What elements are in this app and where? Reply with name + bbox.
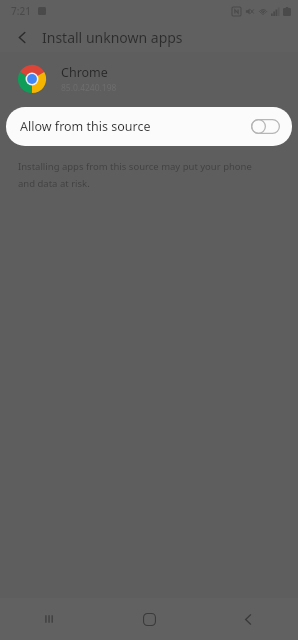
staticText: and data at risk. xyxy=(18,177,90,190)
button[interactable]: Back xyxy=(8,23,36,51)
staticText: Chrome xyxy=(61,64,108,81)
staticText: Allow from this source xyxy=(20,118,151,135)
staticText: Install unknown apps xyxy=(42,28,183,47)
staticText: 7:21 xyxy=(11,4,31,18)
staticText: 85.0.4240.198 xyxy=(61,82,117,94)
button[interactable]: Allow from this source xyxy=(6,107,292,146)
button[interactable]: Home xyxy=(100,598,199,640)
staticText: Installing apps from this source may put… xyxy=(18,160,252,173)
